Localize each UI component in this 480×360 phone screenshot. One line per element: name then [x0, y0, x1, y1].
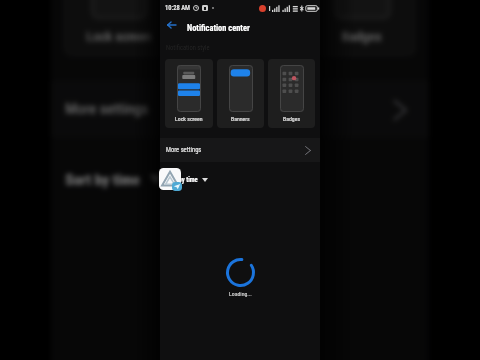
button[interactable]: Sort by time [65, 161, 164, 199]
button[interactable]: Back [164, 17, 179, 32]
staticText: Lock screen [175, 116, 203, 123]
button[interactable]: More settings [160, 138, 320, 162]
staticText: Notification center [187, 23, 250, 33]
staticText: Banners [219, 29, 263, 45]
staticText: 10:28 AM [165, 4, 190, 12]
staticText: Badges [283, 116, 301, 123]
button[interactable]: Banners [217, 59, 264, 128]
button[interactable]: Badges [306, 0, 417, 57]
staticText: Notification style [166, 44, 210, 52]
staticText: Loading... [229, 291, 252, 298]
staticText: Badges [341, 29, 384, 45]
button[interactable]: Badges [268, 59, 315, 128]
button[interactable]: Lock screen [63, 0, 176, 57]
button[interactable]: Sort by time [166, 172, 208, 188]
staticText: Sort by time [166, 176, 198, 184]
button[interactable]: More settings [51, 81, 429, 137]
staticText: More settings [65, 100, 150, 118]
button[interactable]: Lock screen [165, 59, 213, 128]
staticText: Banners [231, 116, 250, 123]
staticText: Lock screen [86, 29, 152, 45]
staticText: Sort by time [65, 170, 141, 189]
staticText: More settings [166, 146, 202, 154]
button[interactable]: Banners [185, 0, 296, 57]
